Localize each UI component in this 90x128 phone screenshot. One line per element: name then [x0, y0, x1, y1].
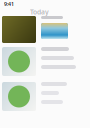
staticText: 9:41 [4, 0, 14, 8]
staticText: Today [30, 8, 49, 16]
button[interactable] [0, 82, 90, 117]
button[interactable] [0, 47, 90, 82]
button[interactable] [0, 16, 90, 47]
